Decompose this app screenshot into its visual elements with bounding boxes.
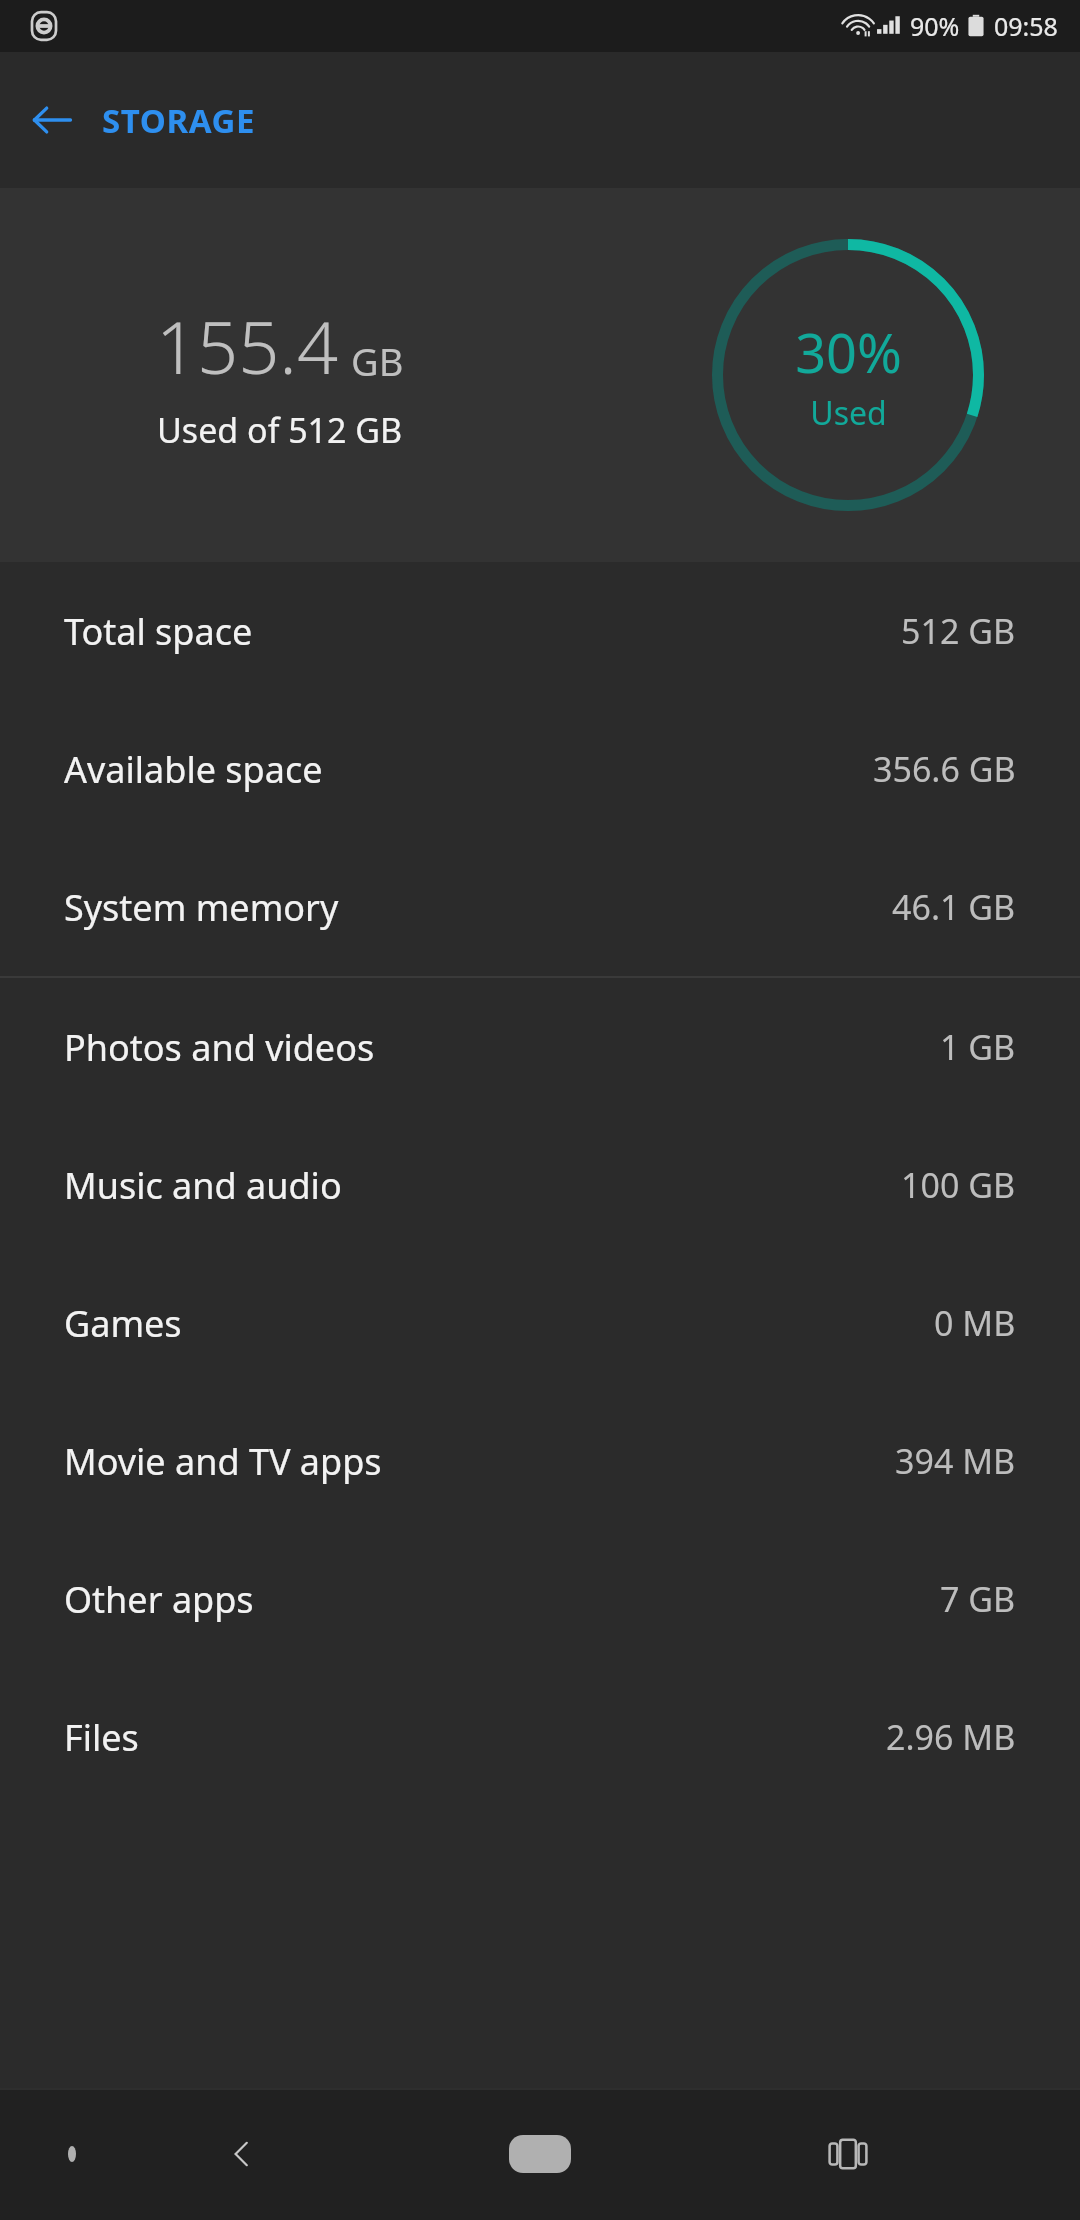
staticText: GB [351, 335, 404, 387]
staticText: 394 MB [895, 1438, 1016, 1484]
staticText: 30% [795, 315, 902, 389]
staticText: 2.96 MB [886, 1714, 1016, 1760]
staticText: 512 GB [901, 608, 1016, 654]
button[interactable]: Files [0, 1668, 1080, 1806]
button[interactable]: Menu indicator [36, 2118, 108, 2190]
staticText: Games [64, 1299, 182, 1348]
staticText: Total space [64, 607, 253, 656]
button[interactable]: Other apps [0, 1530, 1080, 1668]
button[interactable]: Back [20, 88, 84, 152]
staticText: 09:58 [994, 9, 1058, 43]
staticText: 46.1 GB [892, 884, 1016, 930]
staticText: Movie and TV apps [64, 1437, 382, 1486]
staticText: Photos and videos [64, 1023, 375, 1072]
button[interactable]: Available space [0, 700, 1080, 838]
staticText: 0 MB [934, 1300, 1016, 1346]
staticText: System memory [64, 883, 339, 932]
staticText: Available space [64, 745, 323, 794]
staticText: Files [64, 1713, 139, 1762]
button[interactable]: Movie and TV apps [0, 1392, 1080, 1530]
button[interactable]: Games [0, 1254, 1080, 1392]
staticText: Used [810, 391, 887, 435]
staticText: STORAGE [102, 98, 256, 143]
button[interactable]: Back [206, 2118, 278, 2190]
staticText: 90% [910, 9, 960, 43]
staticText: 1 GB [940, 1024, 1016, 1070]
button[interactable]: Photos and videos [0, 978, 1080, 1116]
button[interactable]: Music and audio [0, 1116, 1080, 1254]
staticText: Used of 512 GB [157, 407, 403, 453]
staticText: Other apps [64, 1575, 254, 1624]
button[interactable]: Total space [0, 562, 1080, 700]
button[interactable]: Recents [812, 2118, 884, 2190]
staticText: 155.4 [156, 297, 339, 395]
button[interactable]: Home [488, 2118, 592, 2190]
staticText: Music and audio [64, 1161, 342, 1210]
staticText: 7 GB [940, 1576, 1016, 1622]
staticText: 100 GB [901, 1162, 1016, 1208]
button[interactable]: System memory [0, 838, 1080, 976]
staticText: 356.6 GB [873, 746, 1016, 792]
